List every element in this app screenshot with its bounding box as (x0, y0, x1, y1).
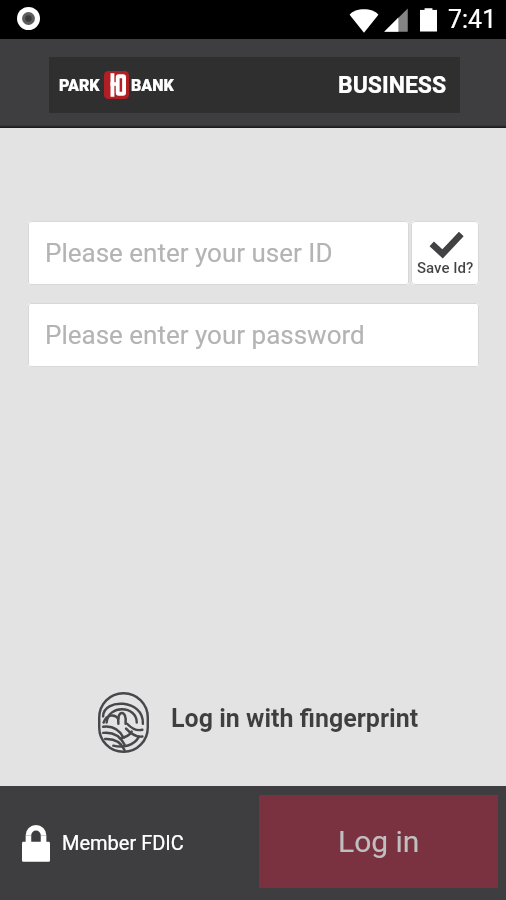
staticText: 7:41 (448, 5, 497, 34)
staticText: Save Id? (417, 259, 474, 277)
staticText: Please enter your user ID (45, 238, 333, 268)
button[interactable]: Save Id? (411, 221, 479, 285)
staticText: Member FDIC (62, 831, 184, 854)
staticText: Log in (338, 824, 420, 859)
button[interactable]: Please enter your user ID (28, 221, 409, 285)
staticText: BUSINESS (338, 72, 447, 99)
button[interactable]: Log in with fingerprint (98, 689, 506, 755)
button[interactable]: Log in (259, 795, 498, 888)
staticText: PARK (59, 76, 100, 95)
button[interactable]: Please enter your password (28, 303, 479, 367)
staticText: BANK (131, 76, 174, 95)
staticText: Please enter your password (45, 320, 365, 350)
staticText: Log in with fingerprint (171, 704, 419, 733)
button[interactable]: Member FDIC (22, 823, 184, 863)
